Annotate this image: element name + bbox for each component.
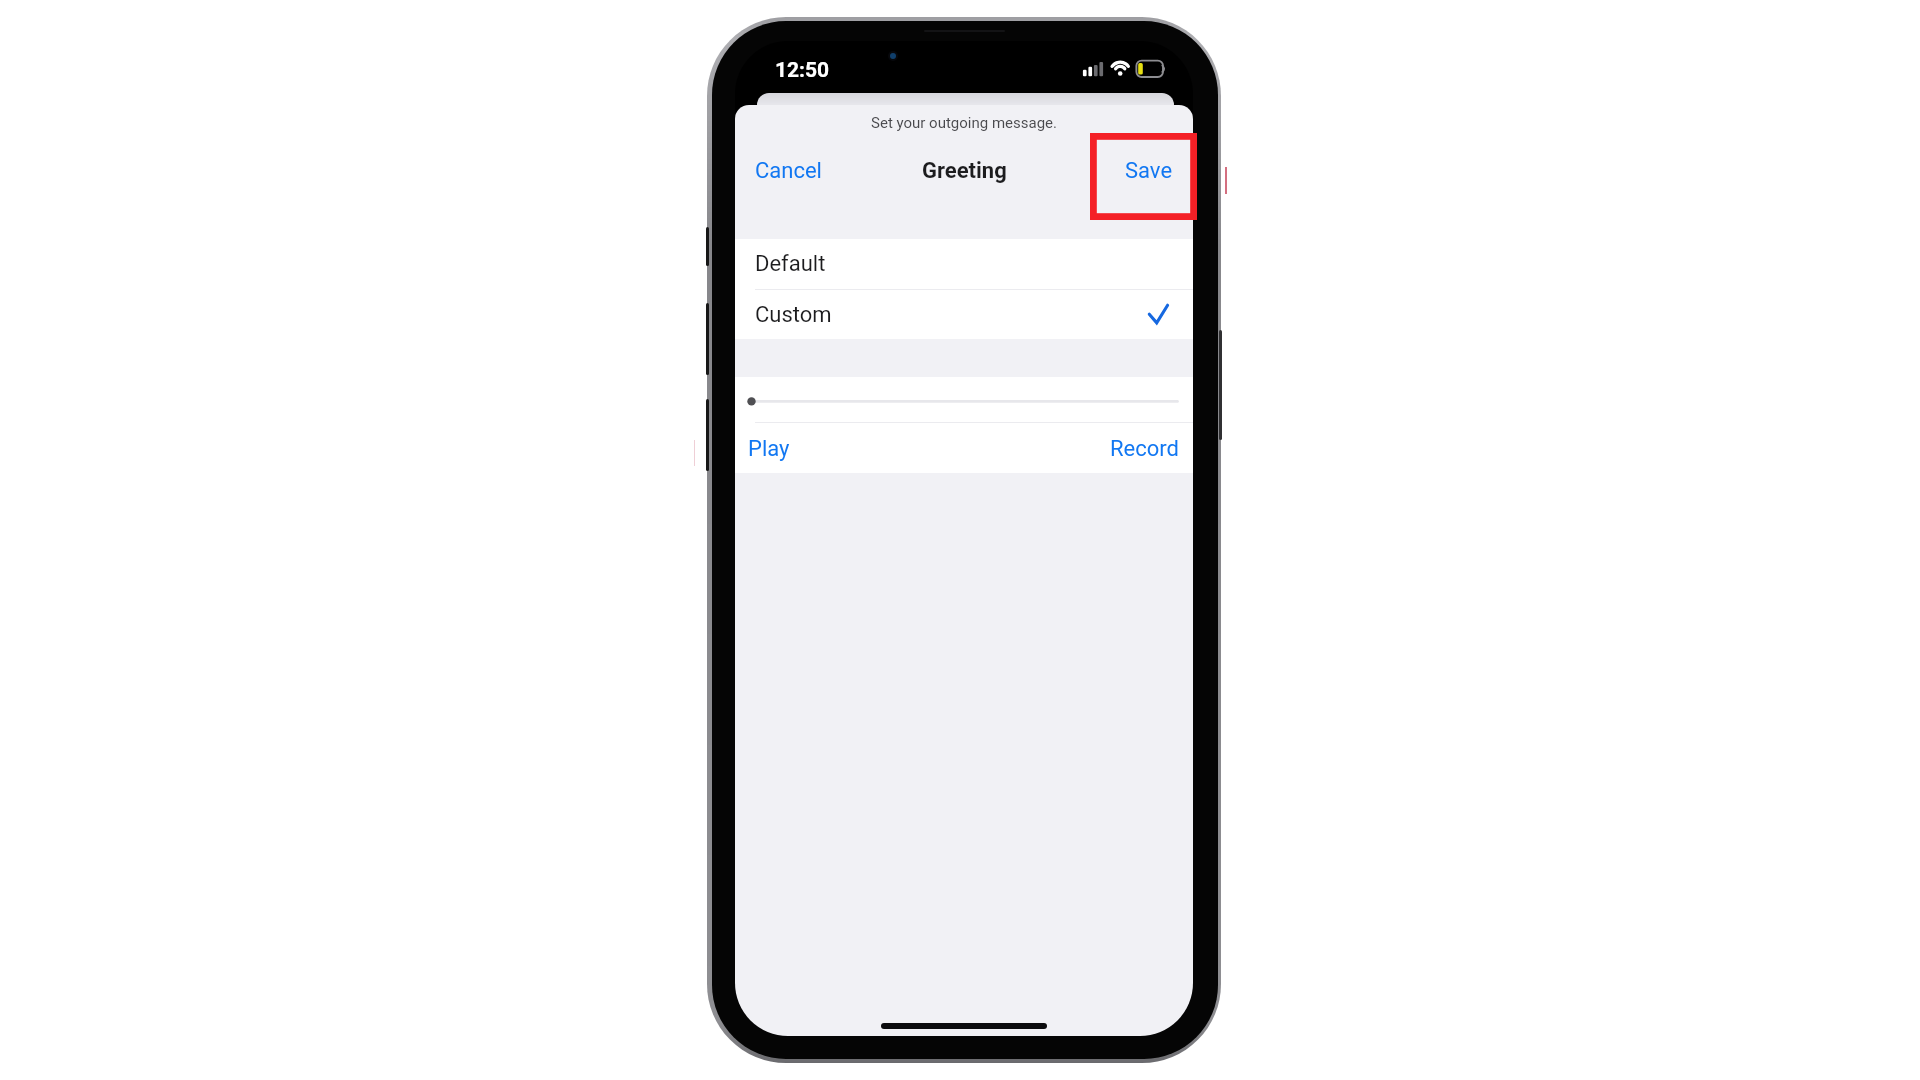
other: Side button [1219,330,1222,440]
other: Volume up [706,303,709,375]
staticText: Greeting [922,158,1007,184]
other: Ring silent switch [706,227,709,266]
button[interactable]: Play [735,424,804,473]
staticText: Record [1110,436,1179,462]
other: Volume down [706,399,709,471]
staticText: Save [1125,158,1173,184]
staticText: Set your outgoing message. [735,114,1193,132]
staticText: Default [755,251,826,277]
button[interactable]: Save [1111,143,1193,199]
other: Selected [1149,304,1170,325]
button[interactable]: Cancel [735,143,834,199]
staticText: Custom [755,302,832,328]
staticText: Cancel [755,158,822,184]
staticText: Play [748,436,790,462]
button[interactable]: Default [735,239,1193,289]
button[interactable]: Custom [735,290,1193,339]
button[interactable]: Record [1096,424,1193,473]
staticText: 12:50 [775,58,830,83]
